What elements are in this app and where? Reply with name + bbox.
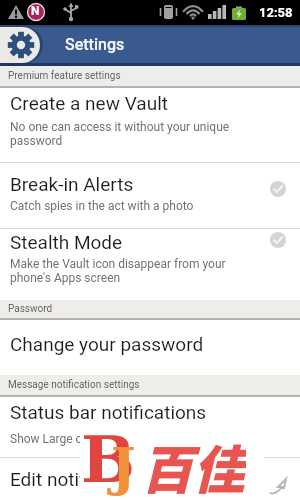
button[interactable]: Stealth Mode [0,229,300,300]
staticText: Change your password [10,333,204,355]
staticText: Create a new Vault [10,92,168,114]
staticText: 百佳 [141,429,246,500]
button[interactable]: Break-in Alerts [0,163,300,228]
staticText: Settings [65,35,125,54]
staticText: Status bar notifications [10,401,207,423]
staticText: J [111,436,136,497]
button[interactable]: Status bar notifications [0,397,300,457]
staticText: No one can access it without your unique… [10,120,260,148]
button[interactable]: Edit notifications [0,458,300,500]
button[interactable]: Change your password [0,320,300,375]
staticText: 12:58 [259,5,293,20]
staticText: Show Large or small notifications [10,432,260,446]
staticText: Message notification settings [8,379,140,391]
staticText: Edit notifications [10,468,152,490]
staticText: Catch spies in the act with a photo [10,199,260,213]
staticText: Stealth Mode [10,231,123,253]
staticText: B [81,422,136,494]
staticText: Premium feature settings [8,70,121,82]
button[interactable] [0,27,40,63]
button[interactable]: Create a new Vault [0,88,300,162]
staticText: N [31,4,40,18]
staticText: Break-in Alerts [10,173,134,195]
staticText: Password [8,303,53,315]
staticText: Make the Vault icon disappear from your … [10,257,260,285]
